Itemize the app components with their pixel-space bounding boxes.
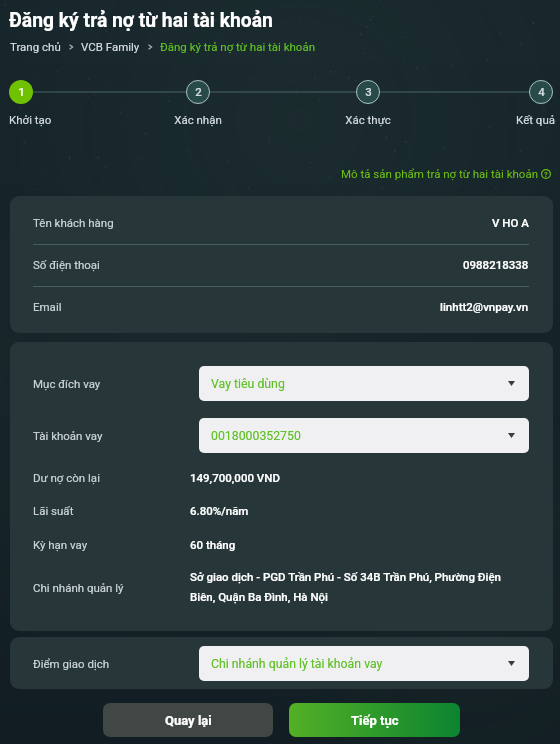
staticText: Tiếp tục (351, 713, 399, 728)
staticText: 3 (365, 85, 372, 98)
staticText: 6.80%/năm (190, 504, 249, 517)
staticText: Khởi tạo (9, 113, 52, 126)
staticText: Xác thực (345, 113, 391, 126)
button[interactable]: Tiếp tục (289, 703, 460, 737)
staticText: Mục đích vay (33, 377, 101, 390)
staticText: Xác nhận (174, 113, 222, 126)
button[interactable]: Quay lại (103, 703, 273, 737)
staticText: Email (33, 300, 62, 313)
staticText: Đăng ký trả nợ từ hai tài khoản (9, 9, 273, 32)
staticText: Kết quả (516, 113, 555, 126)
button[interactable]: 3 (348, 83, 388, 100)
button[interactable]: Chi nhánh quản lý tài khoản vay (199, 646, 529, 681)
staticText: Chi nhánh quản lý tài khoản vay (211, 657, 383, 671)
button[interactable]: Tên khách hàng (33, 201, 529, 243)
staticText: Chi nhánh quản lý (33, 581, 124, 594)
staticText: Tên khách hàng (33, 216, 114, 229)
staticText: Mô tả sản phẩm trả nợ từ hai tài khoản (341, 167, 538, 180)
staticText: Điểm giao dịch (33, 657, 110, 670)
button[interactable]: 1 (1, 83, 41, 100)
button[interactable]: VCB Family (81, 40, 140, 53)
staticText: V HO A (492, 216, 529, 229)
staticText: 0018000352750 (211, 429, 301, 443)
staticText: Quay lại (165, 713, 212, 728)
staticText: 1 (18, 85, 25, 98)
other: Thông tin sản phẩm (541, 169, 551, 179)
staticText: Sở giao dịch - PGD Trần Phú - Số 34B Trầ… (190, 570, 515, 604)
staticText: ? (544, 170, 548, 179)
staticText: 2 (195, 85, 202, 98)
staticText: Tài khoản vay (33, 429, 103, 442)
staticText: 0988218338 (463, 258, 529, 271)
staticText: linhtt2@vnpay.vn (440, 300, 529, 313)
button[interactable]: Mô tả sản phẩm trả nợ từ hai tài khoản (341, 167, 551, 180)
staticText: Kỳ hạn vay (33, 538, 88, 551)
staticText: Số điện thoại (33, 258, 100, 271)
button[interactable]: Vay tiêu dùng (199, 366, 529, 401)
staticText: 60 tháng (190, 538, 236, 551)
staticText: Lãi suất (33, 504, 74, 517)
staticText: Vay tiêu dùng (211, 377, 285, 391)
button[interactable]: 4 (521, 83, 560, 100)
button[interactable]: Email (33, 285, 529, 327)
staticText: 149,700,000 VND (190, 471, 280, 484)
button[interactable]: Trang chủ (10, 40, 61, 53)
button[interactable]: 2 (178, 83, 218, 100)
staticText: 4 (538, 85, 545, 98)
button[interactable]: Số điện thoại (33, 243, 529, 285)
button[interactable]: Đăng ký trả nợ từ hai tài khoản (160, 40, 316, 53)
button[interactable]: 0018000352750 (199, 418, 529, 453)
staticText: Dư nợ còn lại (33, 471, 100, 484)
